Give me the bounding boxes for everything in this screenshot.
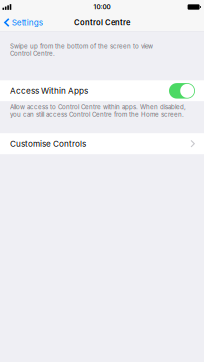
- staticText: Swipe up from the bottom of the screen t…: [10, 42, 153, 57]
- staticText: Access Within Apps: [10, 86, 88, 96]
- staticText: Allow access to Control Centre within ap…: [10, 103, 186, 118]
- staticText: Settings: [12, 18, 43, 27]
- staticText: Customise Controls: [10, 139, 86, 149]
- staticText: Control Centre: [74, 18, 130, 27]
- button[interactable]: Access Within Apps: [169, 83, 195, 99]
- button[interactable]: Customise Controls: [0, 133, 204, 154]
- button[interactable]: Settings: [0, 14, 48, 31]
- staticText: 10:00: [93, 3, 110, 11]
